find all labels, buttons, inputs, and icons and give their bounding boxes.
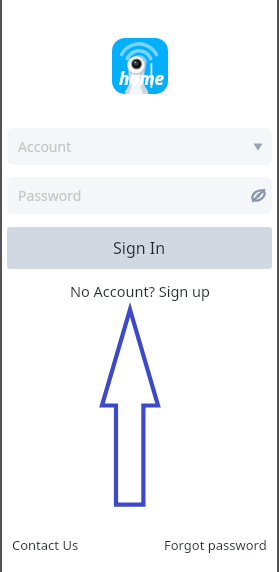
staticText: Password [18,186,82,205]
staticText: Account [18,137,72,156]
other: Show password [250,187,267,204]
button[interactable]: Account [7,128,272,165]
button[interactable]: No Account? Sign up [66,279,214,303]
button[interactable]: Contact Us [0,536,79,554]
button[interactable]: Sign In [7,227,272,269]
button[interactable]: Forgot password [164,536,279,554]
staticText: home [119,67,165,90]
staticText: Sign In [113,237,166,259]
button[interactable]: Password [7,177,272,214]
other: Dropdown [252,141,264,153]
